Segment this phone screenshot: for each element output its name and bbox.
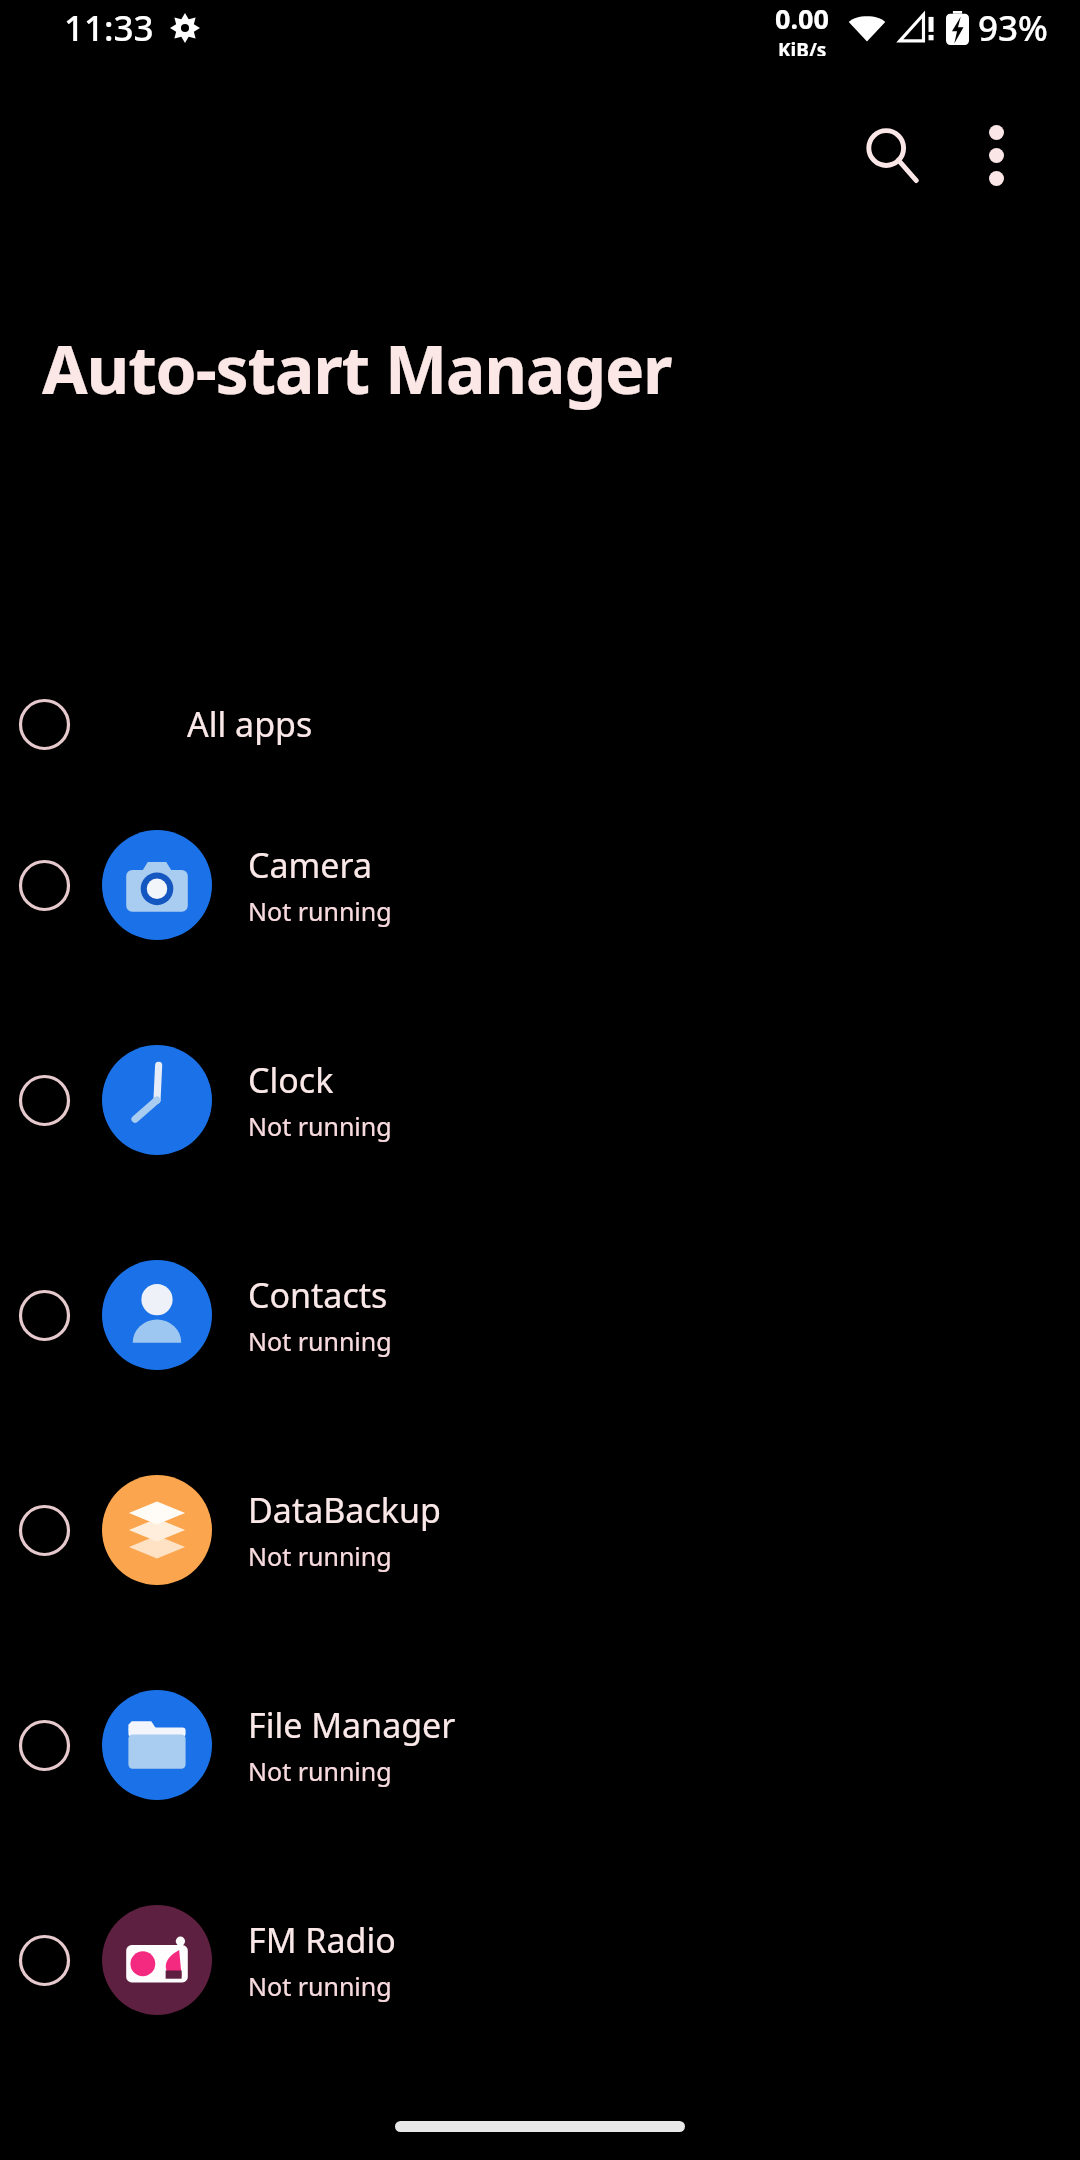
staticText: File Manager	[248, 1702, 456, 1748]
staticText: Not running	[248, 1109, 392, 1143]
staticText: Camera	[248, 842, 372, 888]
button[interactable]: Contacts	[0, 1207, 1080, 1422]
button[interactable]: Camera	[0, 777, 1080, 992]
button[interactable]: More options	[944, 103, 1048, 207]
staticText: 93%	[978, 4, 1048, 52]
staticText: Not running	[248, 1754, 392, 1788]
staticText: 11:33	[64, 4, 154, 52]
staticText: Auto-start Manager	[42, 323, 672, 413]
staticText: Not running	[248, 894, 392, 928]
staticText: Not running	[248, 1324, 392, 1358]
staticText: KiB/s	[778, 37, 827, 56]
staticText: DataBackup	[248, 1487, 441, 1533]
staticText: Not running	[248, 1969, 392, 2003]
button[interactable]: File Manager	[0, 1637, 1080, 1852]
button[interactable]: FM Radio	[0, 1852, 1080, 2067]
staticText: FM Radio	[248, 1917, 396, 1963]
staticText: 0.00	[775, 0, 829, 37]
button[interactable]: All apps	[0, 670, 1080, 777]
staticText: All apps	[187, 701, 313, 747]
staticText: Clock	[248, 1057, 334, 1103]
button[interactable]: Search	[840, 103, 944, 207]
button[interactable]: Clock	[0, 992, 1080, 1207]
staticText: Not running	[248, 1539, 392, 1573]
button[interactable]: DataBackup	[0, 1422, 1080, 1637]
staticText: Contacts	[248, 1272, 388, 1318]
